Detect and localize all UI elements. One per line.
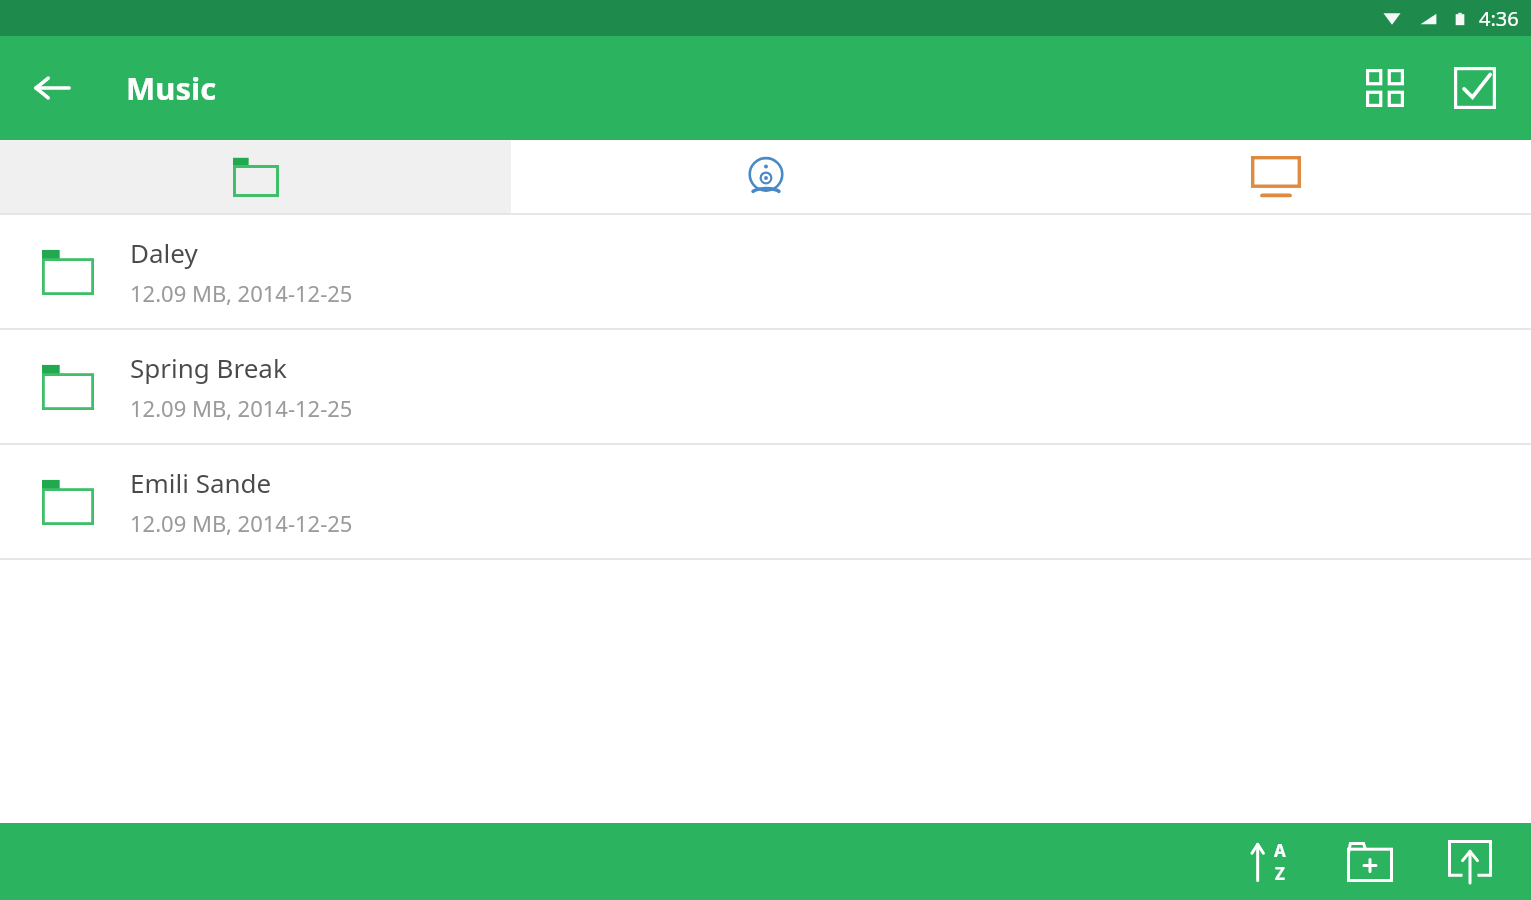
button[interactable]: Screen tab <box>1021 140 1531 213</box>
staticText: Emili Sande <box>130 465 272 500</box>
button[interactable]: Emili Sande <box>0 445 1531 558</box>
button[interactable]: Daley <box>0 215 1531 328</box>
button[interactable]: Grid view <box>1349 52 1421 124</box>
button[interactable]: Spring Break <box>0 330 1531 443</box>
button[interactable]: Upload <box>1433 825 1507 899</box>
button[interactable]: Camera tab <box>511 140 1021 213</box>
staticText: A <box>1274 839 1286 862</box>
staticText: Spring Break <box>130 350 287 385</box>
button[interactable]: Back <box>18 54 86 122</box>
staticText: 12.09 MB, 2014-12-25 <box>130 278 353 308</box>
button[interactable]: Sort <box>1233 825 1307 899</box>
staticText: Z <box>1275 862 1285 885</box>
staticText: Music <box>126 67 217 109</box>
staticText: Daley <box>130 235 198 270</box>
button[interactable]: Select all <box>1439 52 1511 124</box>
staticText: 12.09 MB, 2014-12-25 <box>130 393 353 423</box>
button[interactable]: Files tab <box>0 140 511 213</box>
staticText: 12.09 MB, 2014-12-25 <box>130 508 353 538</box>
staticText: 4:36 <box>1479 5 1519 32</box>
button[interactable]: New folder <box>1333 825 1407 899</box>
